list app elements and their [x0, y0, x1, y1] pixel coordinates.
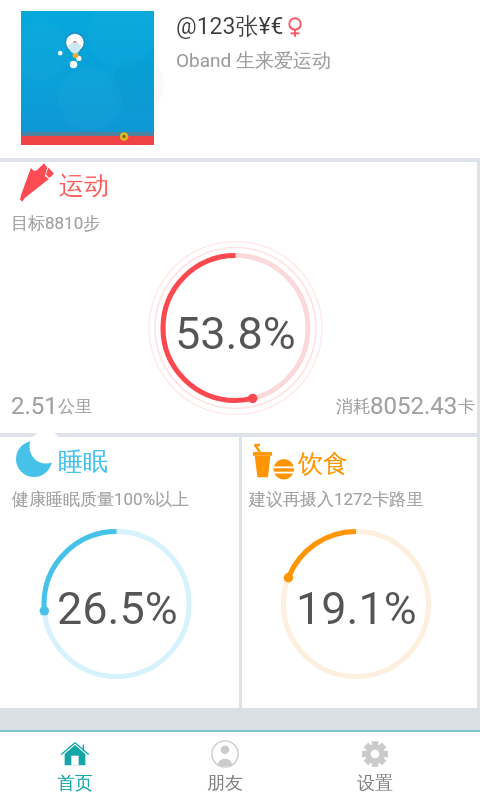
staticText: 2.51	[11, 392, 58, 420]
button[interactable]: Settings	[300, 732, 450, 800]
button[interactable]: Home	[0, 732, 150, 800]
staticText: 消耗	[336, 396, 370, 417]
staticText: 目标8810步	[11, 213, 101, 234]
staticText: 卡	[458, 396, 475, 417]
other: Settings	[361, 740, 389, 768]
staticText: 建议再摄入1272卡路里	[249, 489, 424, 510]
staticText: @123张¥€	[176, 12, 284, 41]
button[interactable]: Friends	[150, 732, 300, 800]
other: Friends	[211, 740, 239, 768]
staticText: 饮食	[298, 448, 348, 479]
staticText: 首页	[57, 772, 93, 795]
staticText: 53.8%	[175, 307, 296, 360]
staticText: 19.1%	[296, 582, 417, 635]
button[interactable]: 睡眠	[0, 437, 239, 708]
staticText: 设置	[357, 772, 393, 795]
staticText: 8052.43	[370, 392, 458, 420]
staticText: 公里	[58, 396, 92, 417]
other: Home	[61, 740, 89, 768]
staticText: 运动	[59, 170, 109, 201]
staticText: 睡眠	[58, 446, 108, 477]
button[interactable]: 运动	[0, 161, 480, 433]
staticText: Oband 生来爱运动	[176, 49, 331, 73]
button[interactable]: @123张¥€	[0, 0, 480, 157]
button[interactable]: 饮食	[242, 437, 480, 708]
staticText: 朋友	[207, 772, 243, 795]
staticText: 26.5%	[57, 582, 178, 635]
staticText: 健康睡眠质量100%以上	[12, 489, 190, 510]
